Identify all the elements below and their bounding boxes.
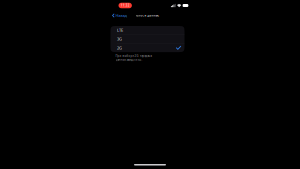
button[interactable]: 3G xyxy=(110,35,184,43)
staticText: 3G xyxy=(117,36,122,42)
staticText: LTE xyxy=(117,28,123,33)
staticText: 2G xyxy=(117,45,122,50)
staticText: Голос и данные xyxy=(135,14,159,17)
staticText: При выборе 2G передача данных замедлится… xyxy=(115,54,151,61)
button[interactable]: 2G xyxy=(110,44,184,52)
staticText: Назад xyxy=(115,13,126,18)
staticText: 11:32 xyxy=(121,4,130,7)
button[interactable]: Назад xyxy=(103,11,135,20)
button[interactable]: LTE xyxy=(110,26,184,34)
